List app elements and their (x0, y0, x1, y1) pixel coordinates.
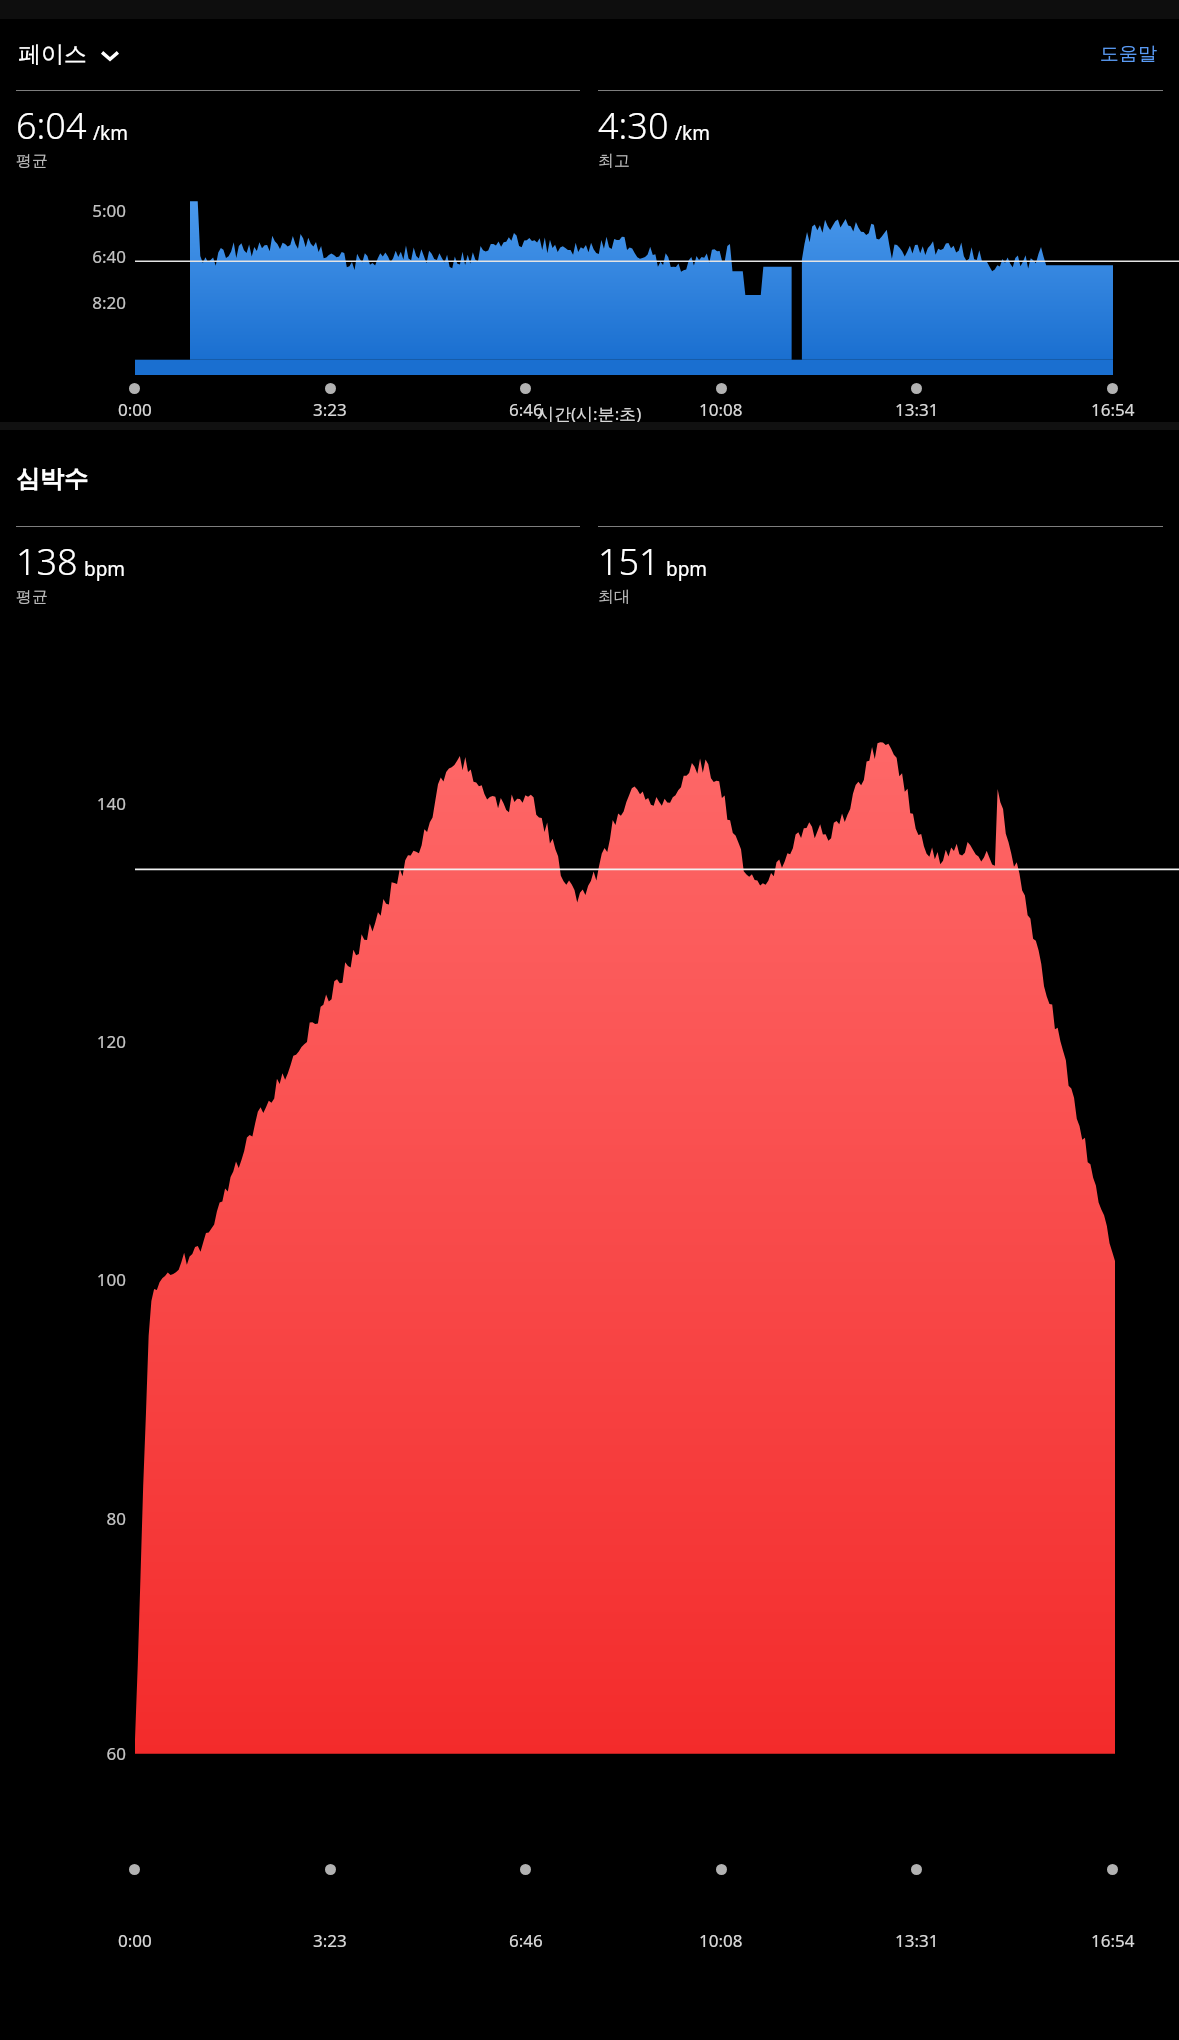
staticText: 100 (96, 1268, 126, 1291)
staticText: 138 (16, 537, 78, 586)
staticText: 151 (598, 537, 660, 586)
staticText: 80 (106, 1507, 126, 1530)
staticText: 140 (96, 792, 126, 815)
staticText: 8:20 (92, 291, 126, 314)
staticText: 평균 (16, 587, 48, 607)
staticText: 5:00 (92, 199, 126, 222)
staticText: 120 (96, 1030, 126, 1053)
button[interactable]: 페이스 (16, 36, 123, 73)
staticText: 3:23 (313, 1929, 347, 1952)
staticText: 10:08 (699, 398, 743, 421)
staticText: 0:00 (118, 398, 152, 421)
staticText: 시간(시:분:초) (537, 402, 642, 425)
staticText: 10:08 (699, 1929, 743, 1952)
staticText: 최고 (598, 151, 630, 171)
staticText: /km (675, 120, 710, 146)
staticText: 도움말 (1100, 42, 1157, 66)
staticText: 13:31 (895, 1929, 939, 1952)
staticText: 13:31 (895, 398, 939, 421)
staticText: 6:40 (92, 245, 126, 268)
staticText: 페이스 (18, 40, 87, 69)
staticText: 평균 (16, 151, 48, 171)
staticText: bpm (84, 556, 126, 582)
staticText: /km (93, 120, 128, 146)
other: Change metric (99, 44, 121, 66)
staticText: 16:54 (1091, 1929, 1135, 1952)
staticText: bpm (666, 556, 708, 582)
button[interactable]: 도움말 (1092, 34, 1165, 74)
staticText: 3:23 (313, 398, 347, 421)
staticText: 60 (106, 1742, 126, 1765)
staticText: 4:30 (598, 101, 669, 150)
staticText: 6:04 (16, 101, 87, 150)
staticText: 심박수 (16, 464, 88, 494)
staticText: 6:46 (509, 1929, 543, 1952)
staticText: 6:46 (509, 398, 543, 421)
staticText: 0:00 (118, 1929, 152, 1952)
staticText: 16:54 (1091, 398, 1135, 421)
staticText: 최대 (598, 587, 630, 607)
